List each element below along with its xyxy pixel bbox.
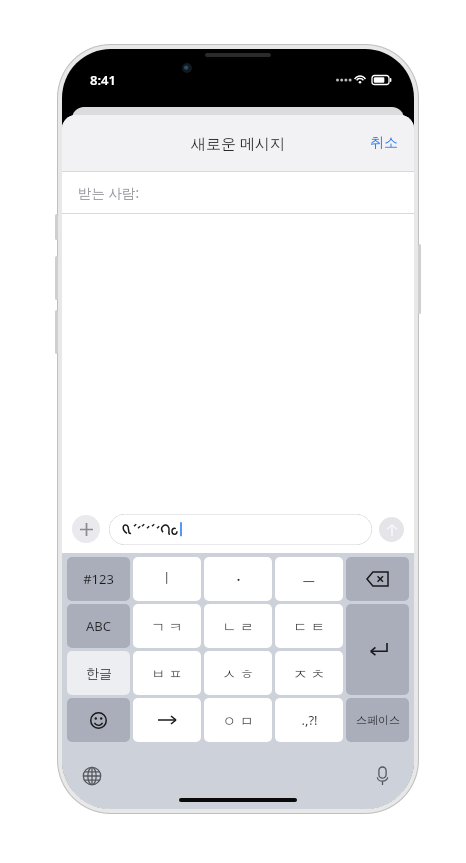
button[interactable]: 한글 [67, 651, 130, 695]
button[interactable]: Emoji [67, 698, 130, 742]
button[interactable]: Change keyboard [75, 759, 109, 793]
staticText: 받는 사람: [78, 184, 140, 202]
button[interactable]: Next [133, 698, 201, 742]
button[interactable]: 스페이스 [346, 698, 409, 742]
staticText: ㄴ ㄹ [222, 617, 254, 636]
button[interactable]: #123 [67, 557, 130, 601]
staticText: .,?! [301, 711, 318, 729]
button[interactable]: Send [379, 517, 404, 542]
staticText: 취소 [370, 134, 398, 152]
button[interactable]: ㄴ ㄹ [204, 604, 272, 648]
staticText: ABC [86, 617, 111, 635]
button[interactable]: Add attachment [72, 515, 100, 543]
staticText: ㄱ ㅋ [151, 617, 183, 636]
staticText: 새로운 메시지 [191, 133, 285, 153]
button[interactable]: Return [346, 604, 409, 695]
button[interactable]: Dictation [365, 759, 399, 793]
staticText: ㅂ ㅍ [151, 664, 183, 683]
staticText: 스페이스 [356, 713, 400, 727]
button[interactable] [109, 514, 372, 545]
staticText: ㅇ ㅁ [222, 711, 254, 730]
staticText: ㄷ ㅌ [293, 617, 325, 636]
button[interactable]: ㅇ ㅁ [204, 698, 272, 742]
staticText: · [236, 568, 241, 591]
button[interactable]: · [204, 557, 272, 601]
staticText: ㅣ [160, 570, 174, 588]
staticText: ㅈ ㅊ [293, 664, 325, 683]
staticText: 8:41 [90, 71, 116, 89]
staticText: 한글 [86, 665, 112, 681]
button[interactable]: Backspace [346, 557, 409, 601]
button[interactable]: ㅣ [133, 557, 201, 601]
button[interactable]: ㅂ ㅍ [133, 651, 201, 695]
button[interactable]: 받는 사람: [62, 172, 414, 213]
button[interactable]: ㅅ ㅎ [204, 651, 272, 695]
staticText: ㅅ ㅎ [222, 664, 254, 683]
button[interactable]: 취소 [354, 124, 414, 162]
staticText: ㅡ [302, 570, 316, 588]
staticText: #123 [83, 570, 114, 588]
button[interactable]: ABC [67, 604, 130, 648]
button[interactable]: ㄱ ㅋ [133, 604, 201, 648]
button[interactable]: ㅡ [275, 557, 343, 601]
button[interactable]: .,?! [275, 698, 343, 742]
button[interactable]: ㄷ ㅌ [275, 604, 343, 648]
button[interactable]: ㅈ ㅊ [275, 651, 343, 695]
